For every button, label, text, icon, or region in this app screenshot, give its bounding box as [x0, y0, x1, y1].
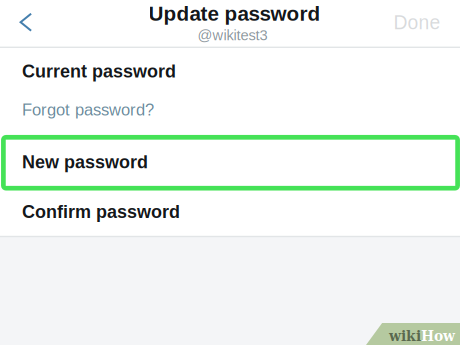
button[interactable]: Confirm password [0, 190, 460, 236]
staticText: Forgot password? [22, 101, 154, 119]
button[interactable]: Back [0, 0, 48, 46]
staticText: @wikitest3 [197, 27, 267, 43]
button[interactable]: Current password [0, 48, 460, 90]
staticText: New password [22, 152, 148, 172]
button[interactable]: New password [0, 135, 460, 190]
staticText: How [421, 328, 455, 344]
staticText: Confirm password [22, 202, 180, 222]
staticText: Done [394, 12, 441, 33]
staticText: wiki [389, 328, 421, 344]
button[interactable]: Forgot password? [0, 90, 460, 135]
staticText: Current password [22, 61, 176, 81]
button[interactable]: Done [378, 0, 460, 46]
staticText: Update password [148, 2, 320, 25]
